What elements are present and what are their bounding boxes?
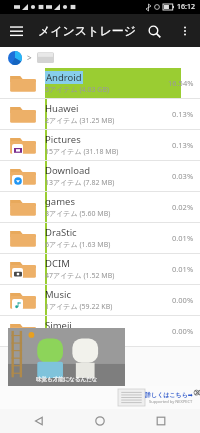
- button[interactable]: Search: [138, 15, 170, 47]
- button[interactable]: More options: [170, 16, 200, 46]
- button[interactable]: Recent apps: [139, 409, 183, 433]
- staticText: DraStic: [45, 226, 77, 239]
- button[interactable]: Android: [0, 68, 200, 98]
- staticText: 2アイテム (43.0 KB): [45, 333, 109, 343]
- button[interactable]: Menu: [0, 14, 33, 47]
- staticText: 2アイテム (31.25 MB): [45, 116, 115, 126]
- staticText: 13アイテム (7.82 MB): [45, 178, 115, 188]
- staticText: 0.00%: [172, 295, 194, 305]
- staticText: 0.13%: [172, 140, 194, 150]
- staticText: 5アイテム (4.03 GB): [45, 85, 110, 95]
- staticText: >: [27, 52, 32, 63]
- staticText: 0.00%: [172, 326, 194, 336]
- staticText: 47アイテム (1.52 MB): [45, 271, 115, 281]
- staticText: 詳しくはこちら➡: [145, 391, 193, 399]
- button[interactable]: Music: [0, 285, 200, 315]
- button[interactable]: Storage usage: [8, 51, 22, 65]
- staticText: 6アイテム (1.63 MB): [45, 240, 111, 250]
- staticText: Supported by NEXPECT: [149, 399, 193, 404]
- button[interactable]: Huawei: [0, 99, 200, 129]
- staticText: DCIM: [45, 257, 70, 270]
- staticText: games: [45, 195, 75, 208]
- staticText: 3アイテム (5.60 MB): [45, 209, 111, 219]
- staticText: Simeji: [45, 319, 72, 332]
- staticText: 0.03%: [172, 171, 194, 181]
- staticText: Music: [45, 288, 72, 301]
- button[interactable]: Pictures: [0, 130, 200, 160]
- staticText: 0.02%: [172, 202, 194, 212]
- button[interactable]: Home: [78, 409, 122, 433]
- staticText: 0.01%: [172, 233, 194, 243]
- button[interactable]: Advertisement image: [118, 389, 145, 406]
- button[interactable]: Video player: [8, 328, 125, 386]
- staticText: 0.01%: [172, 264, 194, 274]
- staticText: 味覚も才能になるんだな: [36, 376, 98, 383]
- button[interactable]: Simeji: [0, 316, 200, 346]
- staticText: 16.54%: [168, 78, 194, 88]
- button[interactable]: DraStic: [0, 223, 200, 253]
- staticText: 1アイテム (59.22 KB): [45, 302, 113, 312]
- staticText: 16:12: [177, 2, 195, 12]
- staticText: Download: [45, 164, 91, 177]
- staticText: Huawei: [45, 102, 79, 115]
- button[interactable]: games: [0, 192, 200, 222]
- button[interactable]: DCIM: [0, 254, 200, 284]
- button[interactable]: Main storage: [37, 51, 54, 64]
- staticText: Pictures: [45, 133, 81, 146]
- staticText: メインストレージ: [38, 23, 136, 38]
- staticText: 15アイテム (31.18 MB): [45, 147, 119, 157]
- button[interactable]: Download: [0, 161, 200, 191]
- button[interactable]: Close ad: [196, 389, 198, 407]
- staticText: Android: [46, 71, 82, 84]
- button[interactable]: 詳しくはこちら➡: [145, 391, 193, 404]
- button[interactable]: Back: [17, 409, 61, 433]
- staticText: 0.13%: [172, 109, 194, 119]
